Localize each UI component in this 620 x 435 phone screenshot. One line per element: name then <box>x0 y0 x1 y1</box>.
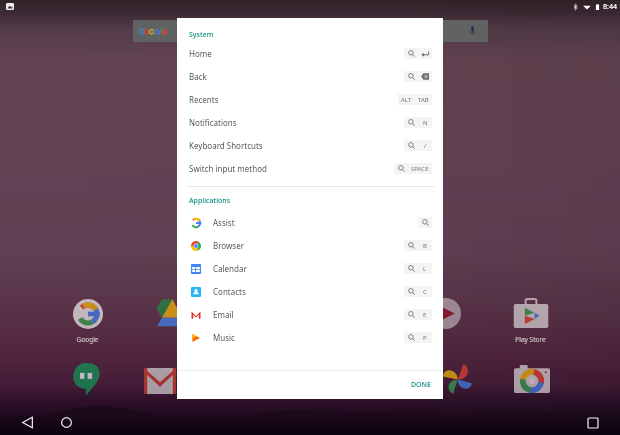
button[interactable]: Assist <box>177 211 443 234</box>
button[interactable]: Camera <box>514 365 550 393</box>
button[interactable]: Play Store <box>513 299 549 328</box>
button[interactable]: Contacts <box>177 280 443 303</box>
staticText: ALT <box>401 96 412 104</box>
button[interactable]: Gmail <box>144 368 176 394</box>
button[interactable]: Recents <box>582 412 604 434</box>
other: Voice search <box>469 26 476 36</box>
button[interactable]: Hangouts <box>71 363 103 396</box>
staticText: Notifications <box>189 117 237 128</box>
button[interactable]: Recents <box>177 88 443 111</box>
button[interactable]: Voice search <box>133 20 488 42</box>
button[interactable]: Photos <box>443 364 475 394</box>
staticText: Back <box>189 71 207 82</box>
button[interactable]: Home <box>55 411 78 434</box>
staticText: Recents <box>189 94 219 105</box>
button[interactable]: Play Movies <box>430 298 461 329</box>
button[interactable]: Switch input method <box>177 157 443 180</box>
staticText: Switch input method <box>189 163 267 174</box>
staticText: Keyboard Shortcuts <box>189 140 263 151</box>
staticText: SPACE <box>411 165 429 173</box>
staticText: TAB <box>418 96 429 104</box>
staticText: Assist <box>213 217 235 228</box>
button[interactable]: Notifications <box>177 111 443 134</box>
button[interactable]: Calendar <box>177 257 443 280</box>
staticText: Home <box>189 48 212 59</box>
button[interactable]: Email <box>177 303 443 326</box>
staticText: N <box>423 119 428 127</box>
staticText: Calendar <box>213 263 247 274</box>
button[interactable]: Browser <box>177 234 443 257</box>
button[interactable]: Drive <box>151 296 184 329</box>
button[interactable]: Music <box>177 326 443 349</box>
button[interactable]: Home <box>177 42 443 65</box>
staticText: Play Store <box>504 335 557 344</box>
staticText: Applications <box>189 196 231 206</box>
staticText: B <box>423 242 427 250</box>
staticText: L <box>423 265 427 273</box>
staticText: E <box>423 311 427 319</box>
staticText: Google <box>61 335 114 344</box>
staticText: Email <box>213 309 234 320</box>
staticText: DONE <box>411 380 431 390</box>
staticText: C <box>423 288 427 296</box>
button[interactable]: Back <box>16 411 39 434</box>
button[interactable]: DONE <box>408 376 434 394</box>
button[interactable]: Keyboard Shortcuts <box>177 134 443 157</box>
button[interactable]: Google <box>73 299 103 329</box>
staticText: / <box>424 142 427 150</box>
staticText: System <box>189 30 214 40</box>
staticText: Browser <box>213 240 244 251</box>
staticText: Contacts <box>213 286 246 297</box>
staticText: 8:44 <box>603 2 617 12</box>
button[interactable]: Back <box>177 65 443 88</box>
staticText: P <box>423 334 427 342</box>
staticText: Music <box>213 332 235 343</box>
